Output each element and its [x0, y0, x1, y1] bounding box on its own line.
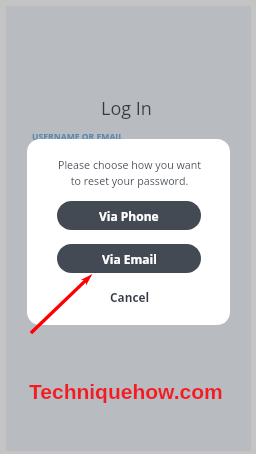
staticText: Techniquehow.com — [29, 380, 223, 403]
button[interactable]: Cancel — [89, 284, 170, 310]
staticText: Please choose how you want to reset your… — [28, 158, 230, 188]
staticText: Log In — [101, 96, 152, 121]
button[interactable]: Via Phone — [57, 201, 201, 230]
staticText: USERNAME OR EMAIL — [32, 131, 124, 143]
button[interactable]: Via Email — [57, 244, 201, 273]
staticText: Via Email — [102, 251, 157, 267]
staticText: Cancel — [110, 289, 150, 305]
staticText: Via Phone — [99, 208, 159, 224]
